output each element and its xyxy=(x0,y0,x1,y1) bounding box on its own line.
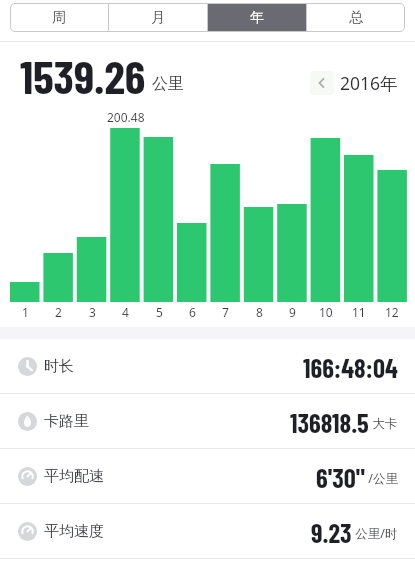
staticText: 公里 xyxy=(152,74,184,94)
staticText: 9 xyxy=(289,304,296,320)
staticText: 周 xyxy=(52,9,66,27)
staticText: 4 xyxy=(122,304,129,320)
staticText: 1539.26 xyxy=(20,47,146,103)
staticText: 公里/时 xyxy=(352,525,398,542)
staticText: 总 xyxy=(349,9,363,27)
staticText: 卡路里 xyxy=(44,412,89,431)
staticText: 大卡 xyxy=(369,415,398,432)
staticText: 2016年 xyxy=(340,71,398,95)
staticText: 9.23 xyxy=(311,516,352,548)
staticText: 200.48 xyxy=(107,109,145,125)
staticText: 2 xyxy=(55,304,62,320)
button[interactable]: 平均配速 xyxy=(0,449,415,504)
button[interactable]: 2016年 xyxy=(310,68,405,98)
button[interactable]: 月 xyxy=(109,3,207,32)
staticText: 12 xyxy=(385,304,399,320)
staticText: 166:48:04 xyxy=(303,351,398,383)
staticText: 月 xyxy=(151,9,165,27)
staticText: 时长 xyxy=(44,357,74,376)
staticText: 1 xyxy=(22,304,29,320)
staticText: 10 xyxy=(319,304,333,320)
button[interactable]: 时长 xyxy=(0,339,415,394)
button[interactable]: 周 xyxy=(10,3,108,32)
staticText: 5 xyxy=(156,304,163,320)
staticText: 8 xyxy=(256,304,263,320)
button[interactable]: 平均速度 xyxy=(0,504,415,559)
staticText: /公里 xyxy=(365,470,398,487)
button[interactable]: 年 xyxy=(208,3,306,32)
staticText: 11 xyxy=(352,304,366,320)
staticText: 平均配速 xyxy=(44,467,104,486)
staticText: 7 xyxy=(222,304,229,320)
button[interactable]: 卡路里 xyxy=(0,394,415,449)
staticText: 年 xyxy=(250,9,264,27)
staticText: 3 xyxy=(89,304,96,320)
staticText: 6'30" xyxy=(316,461,365,493)
staticText: 136818.5 xyxy=(290,406,369,438)
button[interactable]: 总 xyxy=(307,3,405,32)
staticText: 6 xyxy=(189,304,196,320)
staticText: 平均速度 xyxy=(44,522,104,541)
